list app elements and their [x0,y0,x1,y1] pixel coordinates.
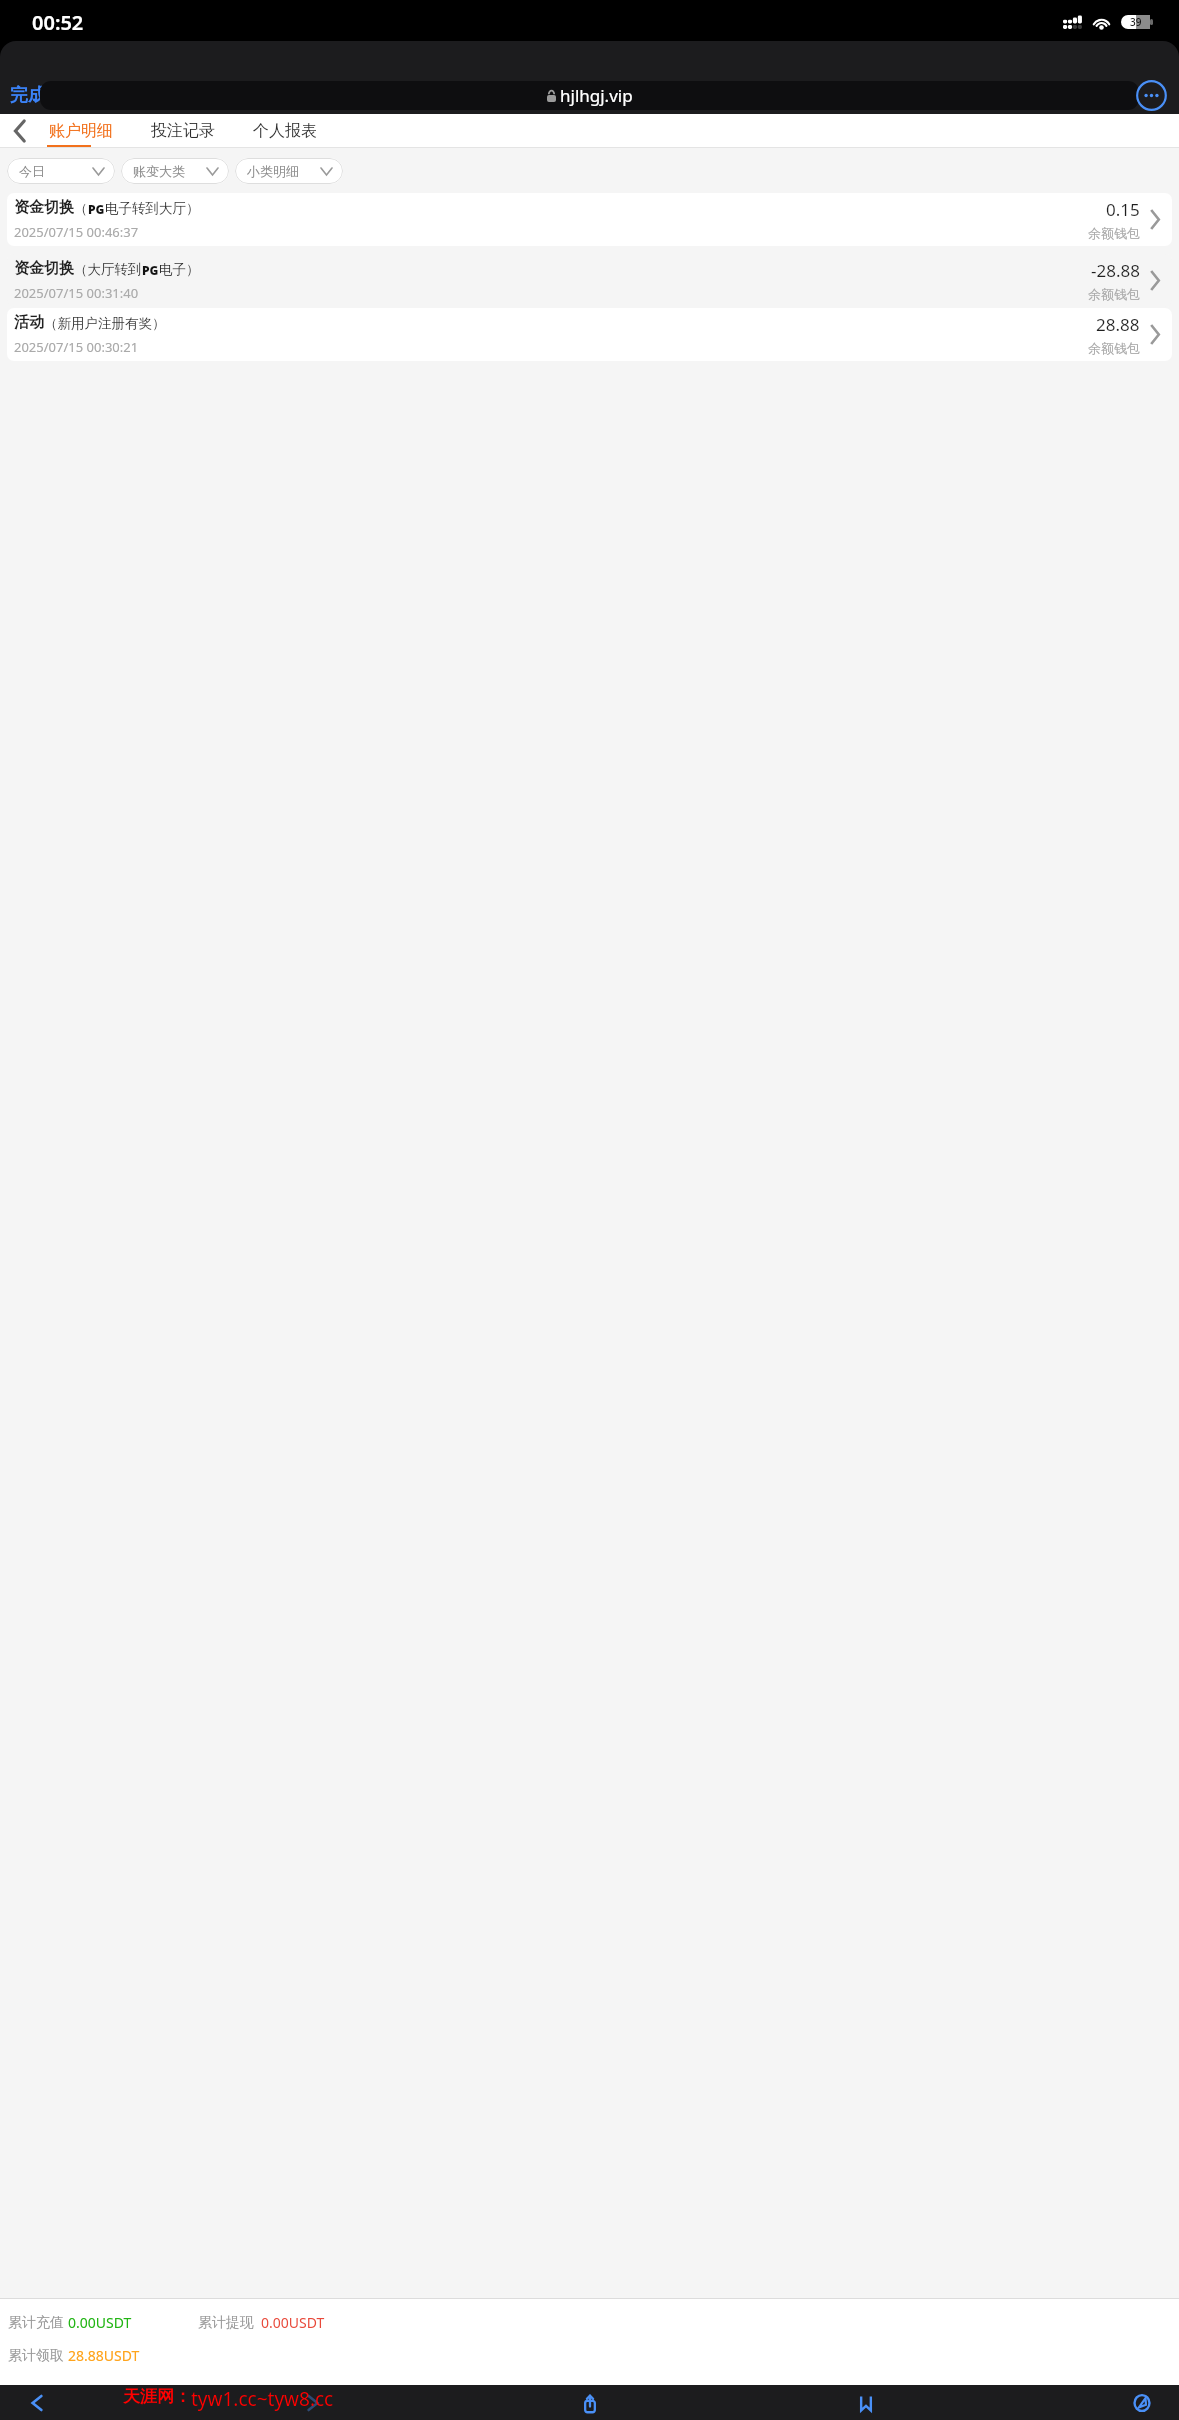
button[interactable]: 今日 [7,158,115,184]
staticText: 2025/07/15 00:30:21 [14,338,139,356]
staticText: （新用户注册有奖） [44,315,166,332]
staticText: 今日 [19,163,45,179]
staticText: 0.00USDT [261,2313,325,2332]
staticText: tyw1.cc~tyw8.cc [191,2386,334,2412]
button[interactable]: 活动 [7,308,1172,361]
staticText: 累计提现 [198,2314,261,2332]
staticText: 2025/07/15 00:31:40 [14,284,139,302]
staticText: 余额钱包 [1088,286,1140,302]
button[interactable]: 资金切换 [7,193,1172,246]
button[interactable]: hjlhgj.vip [40,81,1139,110]
staticText: 天涯网： [123,2386,191,2407]
staticText: 0.00USDT [68,2313,198,2332]
button[interactable]: 小类明细 [235,158,343,184]
button[interactable]: 完成 [0,78,56,113]
staticText: 活动 [14,313,44,332]
staticText: 39 [1130,15,1142,29]
staticText: 28.88 [1096,313,1140,336]
staticText: -28.88 [1091,259,1140,282]
staticText: （大厅转到 [74,261,142,278]
button[interactable]: Share [568,2385,612,2420]
staticText: 电子） [159,261,200,278]
button[interactable]: 投注记录 [149,115,217,147]
staticText: 余额钱包 [1088,340,1140,356]
staticText: PG [142,262,159,278]
staticText: （ [74,200,88,217]
staticText: 0.15 [1106,198,1140,221]
staticText: 账变大类 [133,163,185,179]
staticText: 账户明细 [49,121,113,141]
staticText: 00:52 [32,9,84,36]
staticText: 余额钱包 [1088,225,1140,241]
button[interactable]: 个人报表 [251,115,319,147]
button[interactable]: Back [2,114,38,148]
button[interactable]: 账户明细 [47,115,115,147]
staticText: 投注记录 [151,121,215,141]
button[interactable]: Tabs [1120,2385,1164,2420]
staticText: 累计充值 [8,2314,68,2332]
staticText: 28.88USDT [68,2346,198,2365]
staticText: hjlhgj.vip [560,84,633,107]
staticText: 个人报表 [253,121,317,141]
button[interactable]: Back [15,2385,59,2420]
button[interactable]: More [1136,80,1167,111]
button[interactable]: Forward [291,2385,335,2420]
staticText: PG [88,201,105,217]
staticText: 电子转到大厅） [105,200,200,217]
staticText: 资金切换 [14,198,74,217]
staticText: 累计领取 [8,2347,68,2365]
button[interactable]: Bookmarks [844,2385,888,2420]
button[interactable]: 账变大类 [121,158,229,184]
button[interactable]: 资金切换 [7,254,1172,307]
staticText: 小类明细 [247,163,299,179]
staticText: 2025/07/15 00:46:37 [14,223,139,241]
staticText: 资金切换 [14,259,74,278]
